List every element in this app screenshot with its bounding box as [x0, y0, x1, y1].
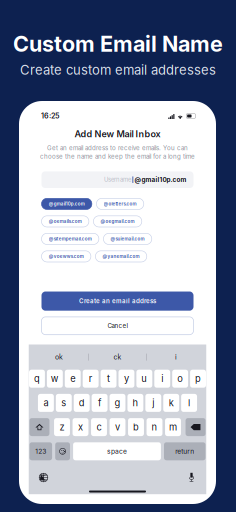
- button[interactable]: r: [83, 370, 99, 388]
- button[interactable]: p: [190, 370, 206, 388]
- button[interactable]: c: [91, 418, 107, 436]
- button[interactable]: h: [127, 394, 143, 412]
- button[interactable]: Create an email address: [41, 291, 193, 311]
- button[interactable]: @oegmail.com: [93, 216, 142, 227]
- staticText: g: [114, 397, 120, 409]
- button[interactable]: z: [54, 418, 70, 436]
- staticText: i: [175, 353, 177, 361]
- button[interactable]: @gmail10p.com: [41, 198, 92, 209]
- staticText: @oemails.com: [49, 219, 82, 224]
- button[interactable]: i: [147, 344, 205, 370]
- staticText: 123: [35, 447, 46, 455]
- staticText: m: [169, 421, 177, 433]
- staticText: z: [59, 421, 64, 433]
- staticText: Create an email address: [79, 297, 156, 305]
- button[interactable]: l: [181, 394, 197, 412]
- staticText: j: [152, 397, 154, 409]
- button[interactable]: 123: [29, 442, 52, 460]
- button[interactable]: e: [65, 370, 81, 388]
- button[interactable]: ok: [30, 344, 88, 370]
- button[interactable]: g: [109, 394, 125, 412]
- staticText: Create custom email addresses: [20, 62, 216, 78]
- staticText: n: [151, 421, 157, 433]
- staticText: e: [70, 373, 75, 384]
- button[interactable]: @sitempemail.com: [41, 233, 99, 244]
- button[interactable]: @voewws.com: [41, 251, 91, 262]
- staticText: q: [34, 373, 40, 384]
- button[interactable]: d: [74, 394, 90, 412]
- staticText: k: [169, 397, 174, 409]
- staticText: @suiemail.com: [111, 236, 145, 242]
- button[interactable]: Dictate: [186, 472, 197, 483]
- button[interactable]: ck: [88, 344, 146, 370]
- staticText: 16:25: [41, 112, 60, 120]
- button[interactable]: @suiemail.com: [103, 233, 152, 244]
- button[interactable]: i: [154, 370, 170, 388]
- staticText: c: [96, 421, 101, 433]
- button[interactable]: f: [92, 394, 107, 412]
- button[interactable]: @oletters.com: [96, 198, 144, 209]
- staticText: x: [78, 421, 83, 433]
- button[interactable]: v: [110, 418, 125, 436]
- staticText: Cancel: [107, 322, 127, 329]
- staticText: @oegmail.com: [101, 219, 135, 224]
- staticText: i: [161, 373, 163, 384]
- staticText: @sitempemail.com: [49, 236, 92, 242]
- staticText: @gmail10p.com: [49, 201, 85, 207]
- button[interactable]: u: [136, 370, 152, 388]
- staticText: a: [43, 397, 48, 409]
- staticText: y: [124, 373, 129, 384]
- button[interactable]: k: [163, 394, 179, 412]
- button[interactable]: w: [47, 370, 63, 388]
- staticText: f: [98, 397, 101, 409]
- button[interactable]: o: [172, 370, 188, 388]
- staticText: d: [79, 397, 85, 409]
- staticText: @oletters.com: [104, 201, 137, 207]
- button[interactable]: @oemails.com: [41, 216, 89, 227]
- button[interactable]: y: [118, 370, 134, 388]
- staticText: p: [195, 373, 201, 384]
- staticText: @yanemail.com: [103, 254, 140, 259]
- button[interactable]: Shift: [29, 418, 49, 436]
- button[interactable]: Cancel: [41, 317, 193, 335]
- staticText: h: [132, 397, 138, 409]
- button[interactable]: x: [73, 418, 88, 436]
- button[interactable]: n: [147, 418, 162, 436]
- staticText: @gmail10p.com: [134, 176, 186, 183]
- staticText: Add New Mail Inbox: [74, 128, 160, 139]
- button[interactable]: q: [29, 370, 45, 388]
- staticText: s: [61, 397, 66, 409]
- staticText: return: [175, 447, 194, 455]
- staticText: o: [177, 373, 183, 384]
- staticText: w: [51, 373, 59, 384]
- staticText: ck: [113, 353, 121, 361]
- button[interactable]: m: [165, 418, 181, 436]
- staticText: u: [141, 373, 147, 384]
- staticText: v: [115, 421, 120, 433]
- staticText: r: [89, 373, 93, 384]
- button[interactable]: b: [128, 418, 144, 436]
- staticText: l: [188, 397, 190, 409]
- button[interactable]: a: [38, 394, 54, 412]
- staticText: Custom Email Name: [13, 31, 223, 57]
- button[interactable]: Switch keyboard: [38, 472, 49, 483]
- button[interactable]: Delete: [186, 418, 206, 436]
- button[interactable]: return: [164, 442, 205, 460]
- button[interactable]: s: [56, 394, 72, 412]
- staticText: t: [107, 373, 110, 384]
- staticText: b: [133, 421, 139, 433]
- button[interactable]: space: [73, 442, 161, 460]
- button[interactable]: j: [145, 394, 161, 412]
- button[interactable]: Emoji: [55, 442, 70, 460]
- staticText: space: [107, 447, 127, 455]
- button[interactable]: @yanemail.com: [95, 251, 147, 262]
- button[interactable]: t: [101, 370, 116, 388]
- staticText: Get an email address to receive emails. …: [47, 144, 188, 152]
- staticText: choose the name and keep the email for a…: [40, 153, 195, 160]
- staticText: Username: [104, 176, 131, 183]
- staticText: ok: [55, 353, 63, 361]
- staticText: @voewws.com: [49, 254, 84, 259]
